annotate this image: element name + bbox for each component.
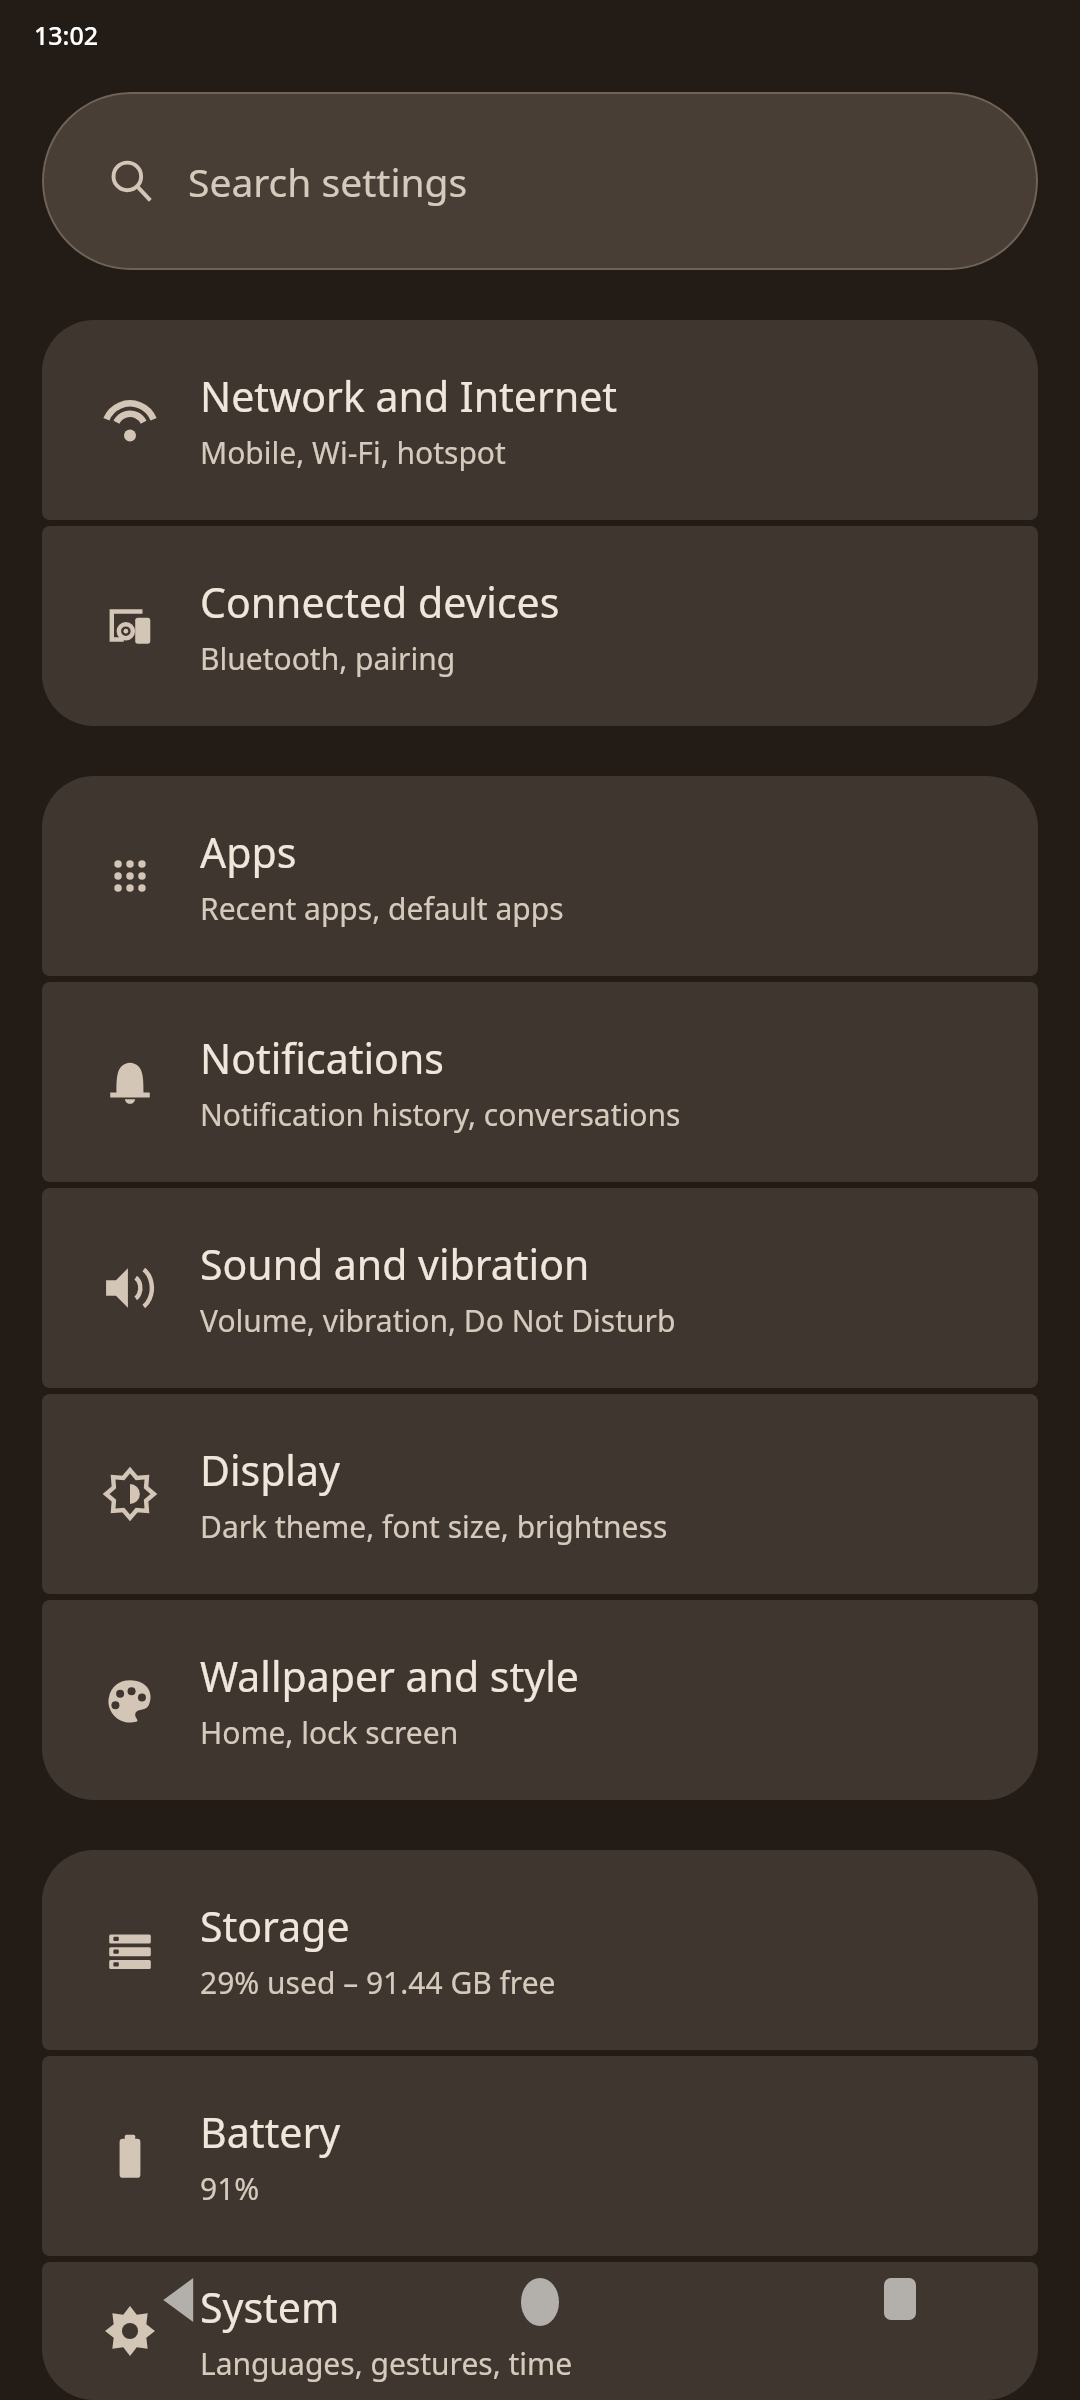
staticText: Connected devices	[200, 574, 560, 630]
staticText: Sound and vibration	[200, 1236, 590, 1292]
button[interactable]: Storage	[42, 1850, 1038, 2050]
button[interactable]: Wallpaper and style	[42, 1600, 1038, 1800]
staticText: 13:02	[34, 18, 99, 52]
button[interactable]: Display	[42, 1394, 1038, 1594]
staticText: 29% used – 91.44 GB free	[200, 1962, 556, 2003]
staticText: System	[200, 2279, 340, 2335]
staticText: Storage	[200, 1898, 350, 1954]
staticText: Recent apps, default apps	[200, 888, 564, 929]
staticText: 91%	[200, 2168, 260, 2209]
button[interactable]: Sound and vibration	[42, 1188, 1038, 1388]
button[interactable]: Network and Internet	[42, 320, 1038, 520]
button[interactable]: Battery	[42, 2056, 1038, 2256]
staticText: Volume, vibration, Do Not Disturb	[200, 1300, 676, 1341]
staticText: Battery	[200, 2104, 341, 2160]
staticText: Dark theme, font size, brightness	[200, 1506, 668, 1547]
staticText: Home, lock screen	[200, 1712, 459, 1753]
staticText: Display	[200, 1442, 340, 1498]
staticText: Notifications	[200, 1030, 444, 1086]
staticText: Languages, gestures, time	[200, 2343, 573, 2384]
staticText: Search settings	[188, 155, 468, 208]
button[interactable]: Apps	[42, 776, 1038, 976]
staticText: Wallpaper and style	[200, 1648, 579, 1704]
button[interactable]: System	[42, 2262, 1038, 2400]
button[interactable]: Back	[0, 2260, 360, 2400]
staticText: Notification history, conversations	[200, 1094, 681, 1135]
button[interactable]: Recents	[720, 2260, 1080, 2400]
button[interactable]: Search settings	[42, 92, 1038, 270]
staticText: Mobile, Wi-Fi, hotspot	[200, 432, 506, 473]
staticText: Apps	[200, 824, 297, 880]
button[interactable]: Connected devices	[42, 526, 1038, 726]
button[interactable]: Notifications	[42, 982, 1038, 1182]
button[interactable]: Home	[360, 2260, 720, 2400]
staticText: Bluetooth, pairing	[200, 638, 456, 679]
staticText: Network and Internet	[200, 368, 618, 424]
